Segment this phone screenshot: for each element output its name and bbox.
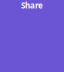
staticText: Share <box>21 0 43 11</box>
